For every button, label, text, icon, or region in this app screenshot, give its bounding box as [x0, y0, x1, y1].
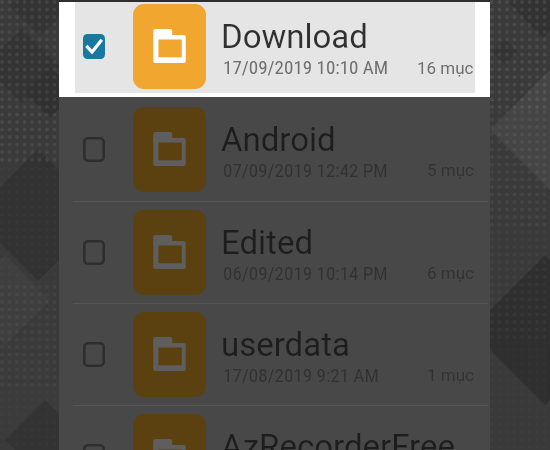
staticText: 07/09/2019 12:42 PM: [223, 159, 388, 181]
staticText: 17/09/2019 10:10 AM: [223, 56, 389, 78]
button[interactable]: Download: [59, 2, 490, 97]
staticText: 1 mục: [427, 365, 474, 385]
staticText: 16 mục: [417, 58, 474, 78]
button[interactable]: Android: [59, 97, 490, 201]
staticText: 5 mục: [427, 160, 474, 180]
staticText: Edited: [221, 223, 313, 262]
staticText: 06/09/2019 10:14 PM: [223, 262, 388, 284]
staticText: Android: [221, 120, 336, 159]
button[interactable]: Edited: [59, 201, 490, 303]
staticText: AzRecorderFree: [221, 427, 455, 450]
button[interactable]: AzRecorderFree: [59, 405, 490, 450]
staticText: 6 mục: [427, 263, 474, 283]
staticText: 17/08/2019 9:21 AM: [223, 364, 379, 386]
staticText: userdata: [221, 325, 350, 364]
button[interactable]: userdata: [59, 303, 490, 405]
staticText: Download: [221, 17, 368, 56]
